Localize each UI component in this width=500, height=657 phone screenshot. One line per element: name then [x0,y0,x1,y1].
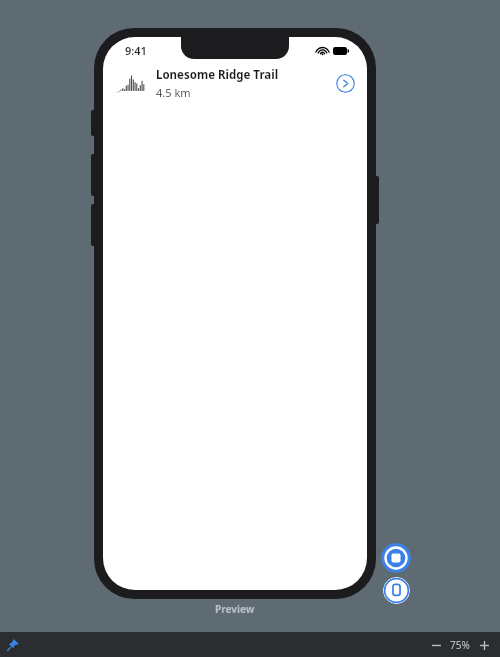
button[interactable]: Lonesome Ridge Trail [103,63,367,103]
staticText: Preview [215,602,255,616]
button[interactable]: Pin [5,637,21,653]
button[interactable]: Zoom in [476,637,492,653]
staticText: 75% [450,638,470,652]
button[interactable]: Interactive preview [381,543,411,573]
button[interactable]: Run on device [383,577,410,604]
button[interactable]: Show details [336,74,355,93]
staticText: Lonesome Ridge Trail [156,67,279,83]
staticText: 9:41 [125,43,147,58]
button[interactable]: Zoom out [428,637,444,653]
staticText: 4.5 km [156,85,191,100]
